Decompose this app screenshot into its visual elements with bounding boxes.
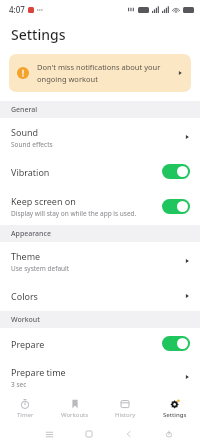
button[interactable]: Colors	[0, 280, 200, 311]
button[interactable]: Toggle on	[162, 199, 190, 214]
staticText: Sound effects	[11, 140, 53, 149]
staticText: General	[11, 105, 38, 115]
button[interactable]: Keep screen on	[0, 187, 200, 225]
staticText: ongoing workout	[37, 74, 98, 84]
staticText: Don't miss notifications about your	[37, 62, 161, 72]
staticText: Timer	[17, 411, 34, 419]
button[interactable]: Toggle on	[162, 164, 190, 179]
staticText: 3 sec	[11, 380, 27, 389]
button[interactable]: Workouts	[50, 397, 100, 421]
staticText: Workouts	[61, 411, 89, 419]
button[interactable]: Prepare time	[0, 359, 200, 395]
staticText: Display will stay on while the app is us…	[11, 209, 137, 218]
staticText: 4:07	[9, 4, 25, 15]
button[interactable]: History	[100, 397, 150, 421]
button[interactable]: Settings	[150, 397, 200, 421]
staticText: Prepare time	[11, 366, 66, 378]
staticText: Sound	[11, 126, 39, 138]
staticText: Use system default	[11, 264, 70, 273]
staticText: Theme	[11, 250, 41, 262]
staticText: Vibration	[11, 166, 50, 178]
staticText: History	[115, 411, 136, 419]
staticText: Workout	[11, 315, 40, 325]
button[interactable]: Theme	[0, 242, 200, 280]
button[interactable]: Sound	[0, 118, 200, 156]
button[interactable]: Screenshot	[149, 430, 189, 438]
button[interactable]: Vibration	[0, 156, 200, 187]
button[interactable]: Prepare	[0, 328, 200, 359]
button[interactable]: Don't miss notifications about your	[9, 54, 191, 92]
staticText: Appearance	[11, 229, 51, 239]
button[interactable]: Toggle on	[162, 336, 190, 351]
button[interactable]: Back	[109, 430, 149, 438]
staticText: Keep screen on	[11, 195, 76, 207]
staticText: Colors	[11, 290, 38, 302]
button[interactable]: Recents	[29, 430, 69, 439]
staticText: Prepare	[11, 338, 45, 350]
button[interactable]: Timer	[0, 397, 50, 421]
staticText: Settings	[163, 411, 187, 419]
button[interactable]: Home	[69, 430, 109, 438]
staticText: Settings	[11, 25, 66, 44]
